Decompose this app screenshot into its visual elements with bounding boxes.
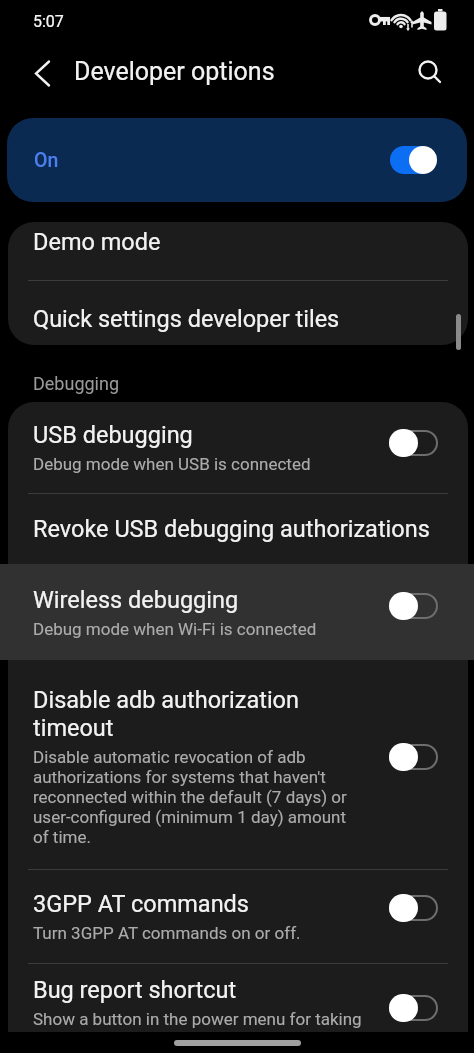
button[interactable]: Wireless debugging (0, 564, 474, 660)
staticText: Debug mode when Wi-Fi is connected (33, 619, 317, 639)
staticText: Quick settings developer tiles (33, 305, 340, 333)
staticText: Show a button in the power menu for taki… (33, 1009, 362, 1029)
staticText: Developer options (74, 57, 275, 86)
button[interactable] (410, 52, 450, 92)
button[interactable]: Demo mode (0, 222, 474, 280)
staticText: Bug report shortcut (33, 976, 237, 1004)
staticText: Revoke USB debugging authorizations (33, 515, 430, 543)
button[interactable]: 3GPP AT commands (0, 870, 474, 963)
staticText: Turn 3GPP AT commands on or off. (33, 923, 301, 943)
button[interactable]: Disable adb authorization timeout (0, 660, 474, 869)
button[interactable]: Bug report shortcut (0, 964, 474, 1032)
staticText: Debugging (33, 373, 120, 394)
button[interactable] (22, 52, 62, 92)
staticText: Wireless debugging (33, 586, 239, 614)
staticText: Demo mode (33, 228, 161, 256)
button[interactable] (174, 1040, 301, 1046)
staticText: Disable automatic revocation of adb auth… (33, 747, 347, 847)
button[interactable]: Revoke USB debugging authorizations (0, 494, 474, 564)
staticText: Debug mode when USB is connected (33, 454, 311, 474)
staticText: 3GPP AT commands (33, 890, 249, 918)
button[interactable]: USB debugging (0, 402, 474, 493)
staticText: Disable adb authorization timeout (33, 686, 299, 742)
staticText: USB debugging (33, 421, 193, 449)
staticText: 5:07 (33, 12, 64, 31)
staticText: On (34, 149, 59, 172)
button[interactable]: On (7, 118, 467, 202)
button[interactable]: Quick settings developer tiles (0, 281, 474, 345)
